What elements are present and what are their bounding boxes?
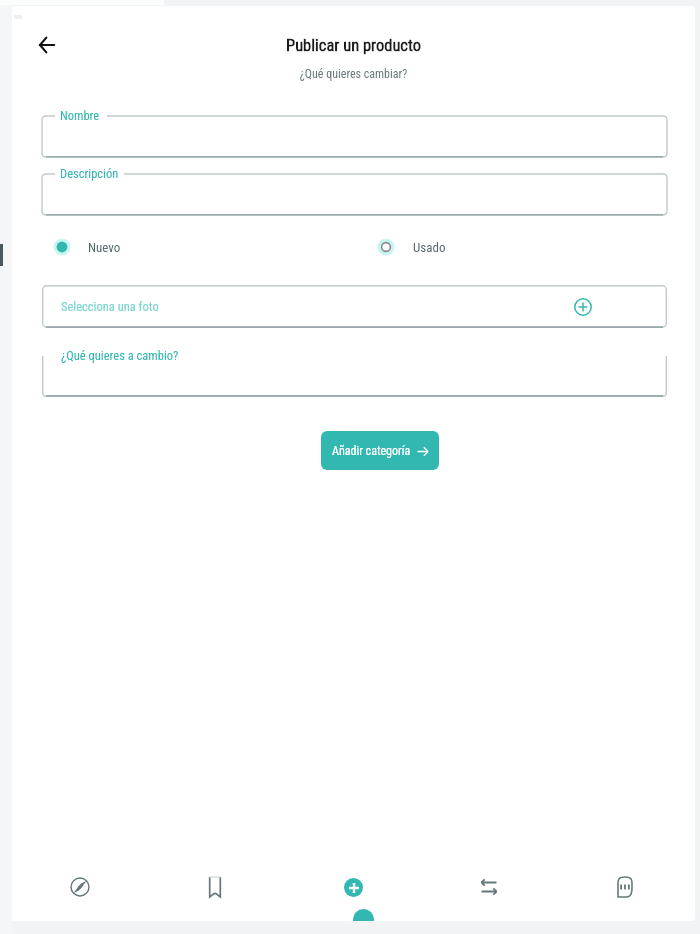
button[interactable]: Add (329, 863, 377, 911)
staticText: Publicar un producto (12, 36, 695, 55)
staticText: Usado (413, 240, 446, 255)
staticText: ¿Qué quieres cambiar? (12, 67, 695, 81)
staticText: ¿Qué quieres a cambio? (61, 348, 179, 363)
button[interactable] (42, 356, 667, 397)
button[interactable] (380, 241, 480, 265)
button[interactable]: Añadir categoría (321, 431, 439, 470)
button[interactable]: Add photo (568, 292, 598, 322)
staticText: Nuevo (88, 240, 121, 255)
button[interactable] (42, 168, 667, 215)
button[interactable]: Back (24, 22, 70, 68)
button[interactable] (56, 241, 156, 265)
staticText: Selecciona una foto (61, 299, 159, 314)
staticText: Nombre (60, 108, 100, 123)
button[interactable]: Saved (191, 863, 239, 911)
staticText: Añadir categoría (332, 444, 411, 458)
button[interactable]: Chat (601, 863, 649, 911)
button[interactable]: Explore (56, 863, 104, 911)
button[interactable] (42, 110, 667, 157)
button[interactable]: Selecciona una foto (42, 285, 667, 328)
staticText: Descripción (60, 166, 119, 181)
button[interactable]: Swap (465, 863, 513, 911)
